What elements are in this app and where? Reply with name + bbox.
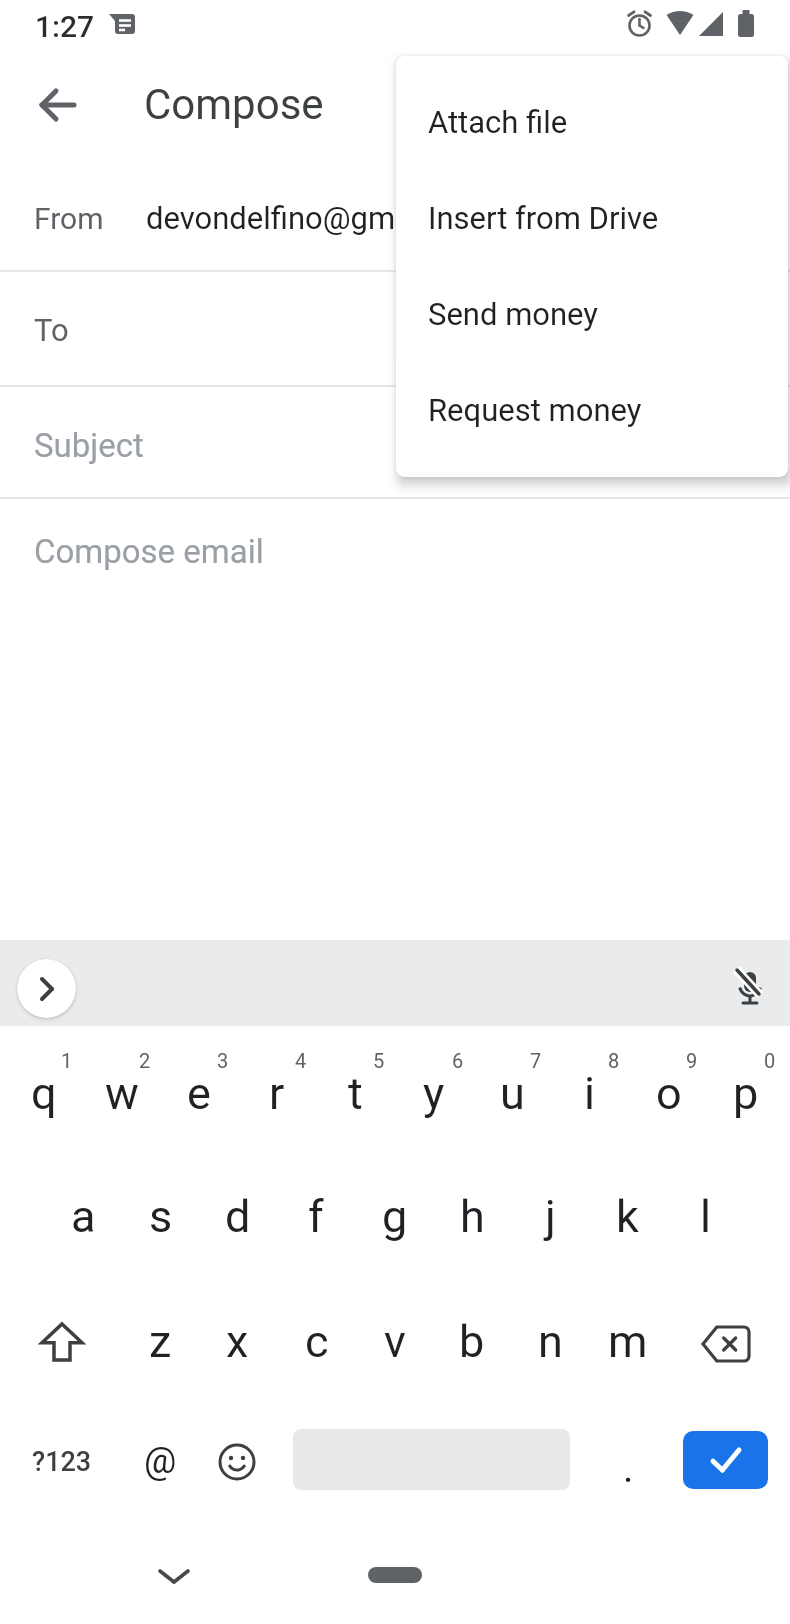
staticText: a xyxy=(71,1190,96,1243)
button[interactable]: l xyxy=(667,1171,744,1261)
button[interactable]: u xyxy=(474,1048,551,1138)
button[interactable]: x xyxy=(199,1296,276,1386)
staticText: To xyxy=(34,312,69,348)
button[interactable] xyxy=(0,192,790,270)
button[interactable] xyxy=(28,1308,96,1376)
button[interactable]: y xyxy=(395,1048,472,1138)
button[interactable]: Insert from Drive xyxy=(396,170,788,266)
staticText: s xyxy=(149,1190,173,1243)
staticText: m xyxy=(608,1315,648,1368)
button[interactable]: t xyxy=(317,1048,394,1138)
staticText: c xyxy=(305,1315,329,1368)
staticText: f xyxy=(308,1190,324,1243)
button[interactable]: g xyxy=(356,1171,433,1261)
staticText: d xyxy=(225,1190,251,1243)
button[interactable]: Request money xyxy=(396,362,788,458)
staticText: 2 xyxy=(139,1049,151,1072)
staticText: b xyxy=(459,1315,485,1368)
staticText: j xyxy=(545,1190,556,1243)
button[interactable]: k xyxy=(589,1171,666,1261)
button[interactable] xyxy=(0,387,790,497)
staticText: e xyxy=(187,1067,211,1120)
button[interactable]: r xyxy=(238,1048,315,1138)
staticText: r xyxy=(269,1067,285,1120)
button[interactable] xyxy=(205,1430,269,1494)
staticText: 3 xyxy=(217,1049,229,1072)
staticText: @ xyxy=(144,1440,177,1482)
button[interactable] xyxy=(726,964,774,1012)
button[interactable] xyxy=(683,1431,768,1489)
staticText: Compose xyxy=(144,80,324,129)
staticText: Request money xyxy=(428,392,642,428)
staticText: Attach file xyxy=(428,104,568,140)
button[interactable] xyxy=(0,272,790,385)
staticText: 1 xyxy=(61,1049,73,1072)
staticText: 5 xyxy=(373,1049,385,1072)
button[interactable] xyxy=(692,1310,760,1378)
staticText: i xyxy=(584,1067,595,1120)
staticText: u xyxy=(500,1067,525,1120)
staticText: 1:27 xyxy=(35,9,95,44)
button[interactable]: Attach file xyxy=(396,74,788,170)
staticText: . xyxy=(623,1445,634,1492)
button[interactable]: ?123 xyxy=(17,1427,107,1497)
staticText: devondelfino@gmail.com xyxy=(146,200,497,236)
button[interactable]: m xyxy=(589,1296,666,1386)
staticText: z xyxy=(149,1315,172,1368)
staticText: n xyxy=(538,1315,563,1368)
button[interactable]: v xyxy=(356,1296,433,1386)
button[interactable]: s xyxy=(122,1171,199,1261)
staticText: p xyxy=(733,1067,759,1120)
button[interactable]: j xyxy=(512,1171,589,1261)
staticText: 9 xyxy=(686,1049,698,1072)
button[interactable] xyxy=(0,499,790,604)
button[interactable] xyxy=(17,959,76,1018)
button[interactable] xyxy=(368,1567,422,1583)
button[interactable]: i xyxy=(551,1048,628,1138)
staticText: t xyxy=(348,1067,363,1120)
staticText: 7 xyxy=(530,1049,542,1072)
button[interactable]: . xyxy=(603,1433,653,1503)
staticText: Send money xyxy=(428,296,599,332)
staticText: h xyxy=(460,1190,485,1243)
button[interactable]: p xyxy=(707,1048,784,1138)
staticText: 6 xyxy=(452,1049,464,1072)
staticText: From xyxy=(34,201,104,236)
button[interactable]: c xyxy=(278,1296,355,1386)
staticText: k xyxy=(616,1190,639,1243)
staticText: x xyxy=(226,1315,249,1368)
staticText: Insert from Drive xyxy=(428,200,659,236)
button[interactable]: w xyxy=(83,1048,160,1138)
button[interactable]: n xyxy=(512,1296,589,1386)
button[interactable]: e xyxy=(160,1048,237,1138)
button[interactable] xyxy=(146,1548,202,1604)
staticText: 8 xyxy=(608,1049,620,1072)
button[interactable]: q xyxy=(5,1048,82,1138)
button[interactable]: d xyxy=(199,1171,276,1261)
staticText: g xyxy=(382,1190,408,1243)
button[interactable] xyxy=(30,77,86,133)
staticText: 4 xyxy=(295,1049,307,1072)
button[interactable]: b xyxy=(433,1296,510,1386)
button[interactable]: f xyxy=(277,1171,354,1261)
button[interactable]: Send money xyxy=(396,266,788,362)
button[interactable]: a xyxy=(45,1171,122,1261)
staticText: l xyxy=(700,1190,711,1243)
staticText: ?123 xyxy=(32,1446,92,1478)
button[interactable]: o xyxy=(630,1048,707,1138)
staticText: Compose email xyxy=(34,532,264,571)
button[interactable]: z xyxy=(122,1296,199,1386)
staticText: v xyxy=(384,1315,406,1368)
staticText: q xyxy=(31,1067,57,1120)
button[interactable]: h xyxy=(434,1171,511,1261)
staticText: w xyxy=(105,1067,139,1120)
staticText: 0 xyxy=(764,1049,776,1072)
staticText: y xyxy=(423,1067,445,1120)
staticText: o xyxy=(656,1067,682,1120)
staticText: Subject xyxy=(34,426,144,465)
button[interactable]: @ xyxy=(125,1426,195,1496)
